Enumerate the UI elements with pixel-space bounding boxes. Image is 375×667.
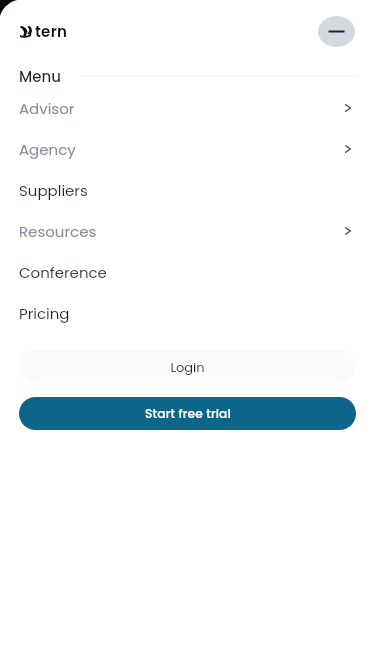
- staticText: Login: [170, 358, 205, 376]
- button[interactable]: tern home: [19, 21, 68, 42]
- staticText: Conference: [19, 262, 107, 283]
- staticText: Menu: [19, 66, 61, 87]
- staticText: Suppliers: [19, 180, 88, 201]
- button[interactable]: Close menu: [318, 16, 355, 47]
- staticText: tern: [35, 21, 68, 42]
- button[interactable]: Advisor: [0, 88, 375, 129]
- button[interactable]: Agency: [0, 129, 375, 170]
- button[interactable]: Suppliers: [0, 170, 375, 211]
- button[interactable]: Login: [19, 350, 356, 383]
- staticText: Resources: [19, 221, 97, 242]
- button[interactable]: Pricing: [0, 293, 375, 334]
- staticText: Agency: [19, 139, 76, 160]
- button[interactable]: Resources: [0, 211, 375, 252]
- staticText: Advisor: [19, 98, 75, 119]
- staticText: Start free trial: [145, 405, 231, 422]
- staticText: Pricing: [19, 303, 70, 324]
- button[interactable]: Conference: [0, 252, 375, 293]
- button[interactable]: Start free trial: [19, 397, 356, 430]
